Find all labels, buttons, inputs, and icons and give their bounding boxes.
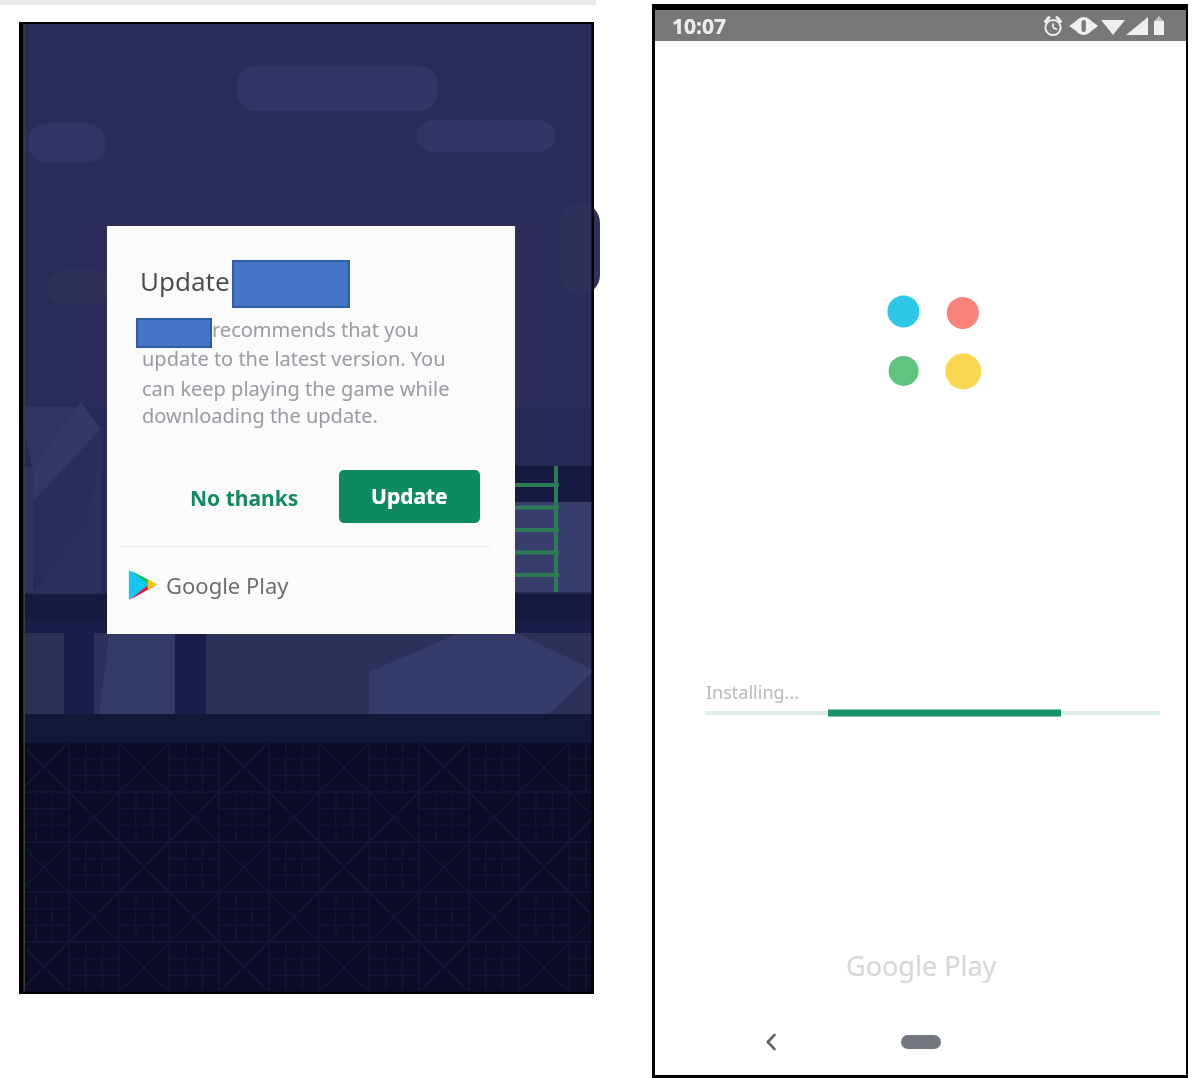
staticText: 10:07	[672, 12, 726, 41]
staticText: No thanks	[190, 484, 299, 513]
staticText: downloading the update.	[142, 402, 378, 429]
button[interactable]: Home	[901, 1035, 941, 1049]
staticText: Google Play	[166, 570, 289, 600]
staticText: recommends that you	[212, 316, 419, 343]
staticText: Update	[140, 263, 230, 298]
button[interactable]: No thanks	[182, 473, 306, 523]
button[interactable]: Back	[751, 1022, 791, 1062]
button[interactable]: Update	[339, 470, 480, 523]
staticText: Google Play	[846, 947, 997, 984]
staticText: update to the latest version. You	[142, 345, 446, 372]
staticText: Installing...	[706, 680, 800, 705]
staticText: Update	[371, 482, 448, 511]
staticText: can keep playing the game while	[142, 375, 450, 402]
